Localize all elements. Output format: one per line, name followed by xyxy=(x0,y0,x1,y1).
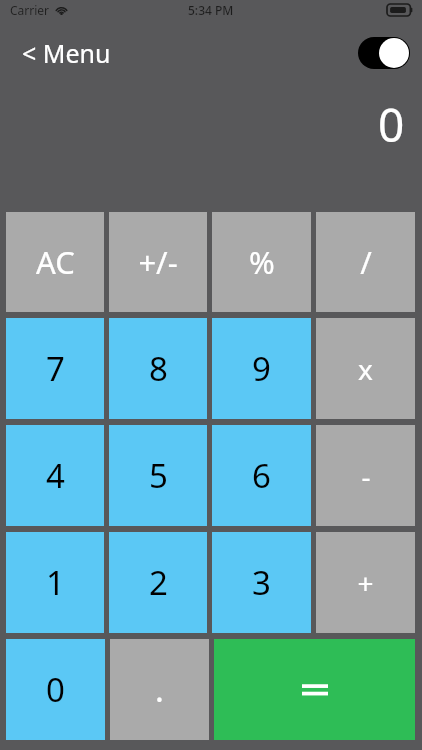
button[interactable]: x xyxy=(316,318,415,419)
button[interactable]: +/- xyxy=(109,212,207,312)
staticText: Carrier xyxy=(10,2,50,18)
button[interactable]: . xyxy=(110,639,209,740)
staticText: 5:34 PM xyxy=(188,2,234,18)
button[interactable]: 4 xyxy=(6,425,104,526)
button[interactable]: 2 xyxy=(109,532,207,633)
button[interactable]: 8 xyxy=(109,318,207,419)
button[interactable]: 5 xyxy=(109,425,207,526)
staticText: < Menu xyxy=(22,36,111,70)
staticText: AC xyxy=(36,241,75,283)
staticText: +/- xyxy=(138,241,178,283)
staticText: 5 xyxy=(149,453,168,498)
staticText: % xyxy=(249,241,275,283)
button[interactable]: 3 xyxy=(212,532,311,633)
button[interactable]: / xyxy=(316,212,415,312)
button[interactable]: Toggle xyxy=(358,37,410,69)
staticText: 1 xyxy=(46,560,65,605)
button[interactable]: 1 xyxy=(6,532,104,633)
button[interactable]: + xyxy=(316,532,415,633)
button[interactable]: - xyxy=(316,425,415,526)
staticText: 7 xyxy=(46,346,65,391)
button[interactable]: 9 xyxy=(212,318,311,419)
button[interactable] xyxy=(214,639,415,740)
staticText: 4 xyxy=(46,453,65,498)
button[interactable]: AC xyxy=(6,212,104,312)
staticText: + xyxy=(357,564,374,602)
staticText: . xyxy=(155,667,164,712)
button[interactable]: < Menu xyxy=(18,32,115,74)
staticText: - xyxy=(361,457,371,495)
staticText: / xyxy=(360,241,372,283)
staticText: 0 xyxy=(46,667,65,712)
button[interactable]: % xyxy=(212,212,311,312)
staticText: x xyxy=(358,350,373,388)
button[interactable]: 0 xyxy=(6,639,105,740)
staticText: 3 xyxy=(252,560,271,605)
button[interactable]: 7 xyxy=(6,318,104,419)
staticText: 8 xyxy=(149,346,168,391)
staticText: 6 xyxy=(252,453,271,498)
button[interactable]: 6 xyxy=(212,425,311,526)
staticText: 9 xyxy=(252,346,271,391)
staticText: 2 xyxy=(149,560,168,605)
staticText: 0 xyxy=(378,93,405,156)
